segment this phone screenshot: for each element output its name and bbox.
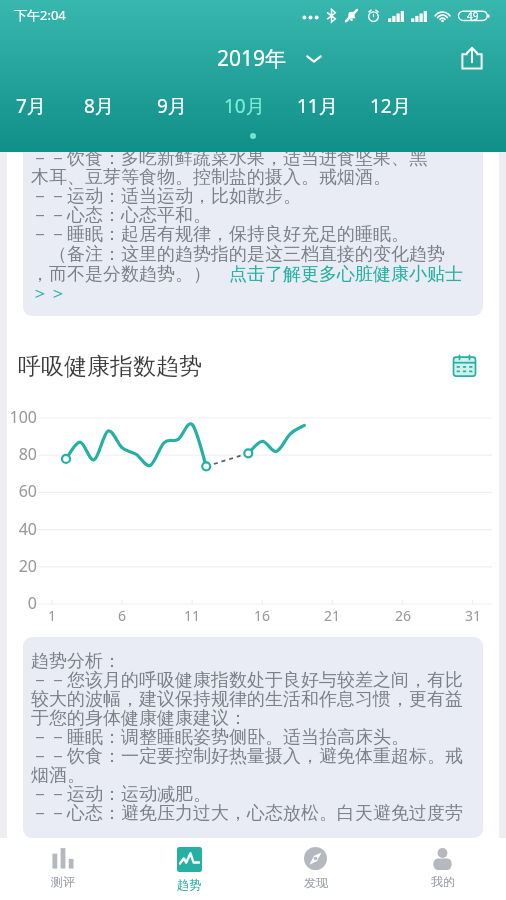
staticText: 31: [463, 606, 483, 625]
staticText: 16: [252, 606, 272, 625]
staticText: 12月: [370, 93, 411, 119]
staticText: 测评: [51, 874, 75, 889]
staticText: 20: [7, 555, 37, 577]
button[interactable]: 趋势: [126, 838, 252, 900]
staticText: 11: [182, 606, 202, 625]
button[interactable]: 我的: [379, 838, 506, 900]
staticText: 我的: [431, 874, 455, 889]
button[interactable]: 12月: [354, 85, 427, 127]
staticText: 趋势: [177, 877, 201, 892]
button[interactable]: 9月: [135, 85, 208, 127]
button[interactable]: Calendar: [447, 349, 481, 383]
staticText: 7月: [16, 93, 46, 119]
staticText: 发现: [304, 875, 328, 890]
staticText: 0: [7, 592, 37, 614]
staticText: 49: [467, 9, 479, 23]
staticText: 1: [42, 606, 62, 625]
staticText: 40: [7, 518, 37, 540]
button[interactable]: 10月: [208, 85, 281, 127]
staticText: 下午2:04: [14, 6, 66, 24]
staticText: 11月: [297, 93, 338, 119]
staticText: 26: [393, 606, 413, 625]
staticText: 8月: [84, 93, 114, 119]
staticText: 100: [7, 406, 37, 428]
staticText: 趋势分析： －－您该月的呼吸健康指数处于良好与较差之间，有比 较大的波幅，建议保…: [31, 650, 463, 824]
button[interactable]: 测评: [0, 838, 126, 900]
staticText: 您该月的心脏健康指数处于良好状态，建议保持 规律的生活和作息习惯，更有益于您的身…: [31, 152, 463, 305]
button[interactable]: 2019年: [211, 38, 328, 79]
button[interactable]: 8月: [62, 85, 135, 127]
staticText: 呼吸健康指数趋势: [18, 352, 202, 381]
button[interactable]: 7月: [0, 85, 62, 127]
staticText: 2019年: [217, 44, 287, 73]
staticText: 6: [112, 606, 132, 625]
staticText: 60: [7, 480, 37, 502]
staticText: 21: [322, 606, 342, 625]
button[interactable]: Share: [452, 38, 492, 78]
staticText: 9月: [157, 93, 187, 119]
button[interactable]: 发现: [252, 838, 379, 900]
staticText: 10月: [224, 93, 265, 119]
staticText: 80: [7, 443, 37, 465]
button[interactable]: 11月: [281, 85, 354, 127]
